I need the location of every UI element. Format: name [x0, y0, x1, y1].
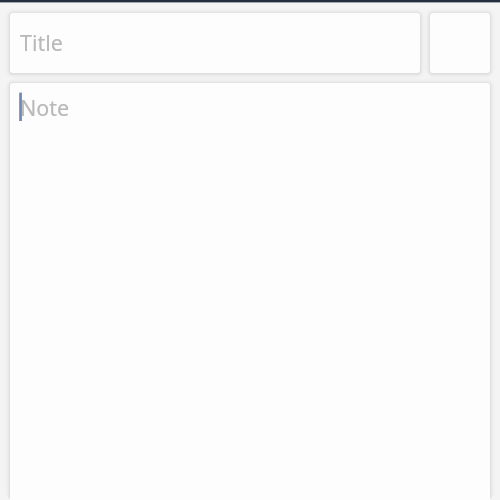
staticText: Note: [20, 93, 70, 122]
button[interactable]: Note: [10, 83, 490, 500]
button[interactable]: Title: [10, 13, 420, 73]
staticText: Title: [20, 28, 63, 57]
